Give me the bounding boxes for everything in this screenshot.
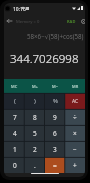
staticText: .	[34, 161, 36, 170]
button[interactable]: 5	[25, 125, 45, 141]
button[interactable]: 2	[25, 141, 45, 157]
staticText: ÷	[73, 113, 77, 122]
staticText: 1	[13, 145, 17, 154]
button[interactable]: 1	[4, 141, 25, 157]
button[interactable]: +	[65, 157, 85, 173]
staticText: 4	[13, 129, 17, 138]
staticText: MR	[72, 84, 79, 89]
staticText: 0	[13, 161, 17, 170]
staticText: M−	[52, 84, 58, 89]
button[interactable]: )	[25, 93, 45, 109]
staticText: Memory = 0	[16, 19, 40, 25]
staticText: 9	[53, 113, 57, 122]
button[interactable]: MR	[65, 79, 85, 93]
staticText: M+	[32, 84, 38, 89]
staticText: 3	[53, 145, 57, 154]
staticText: MC	[11, 84, 18, 89]
button[interactable]: 9	[45, 109, 65, 125]
staticText: 8	[33, 113, 37, 122]
button[interactable]: Settings	[78, 15, 85, 27]
button[interactable]: 7	[4, 109, 25, 125]
staticText: =	[53, 161, 57, 170]
button[interactable]: ÷	[65, 109, 85, 125]
button[interactable]: M+	[25, 79, 45, 93]
staticText: %	[53, 97, 58, 105]
staticText: −	[73, 145, 77, 154]
staticText: AC	[72, 98, 79, 105]
staticText: )	[34, 97, 36, 105]
button[interactable]: ×	[65, 125, 85, 141]
staticText: 10:16	[13, 6, 26, 13]
staticText: 2	[33, 145, 37, 154]
button[interactable]: Back	[4, 15, 14, 27]
button[interactable]: .	[25, 157, 45, 173]
button[interactable]: MC	[4, 79, 25, 93]
button[interactable]: 3	[45, 141, 65, 157]
button[interactable]: 0	[4, 157, 25, 173]
staticText: +	[73, 161, 77, 170]
staticText: 5	[33, 129, 37, 138]
button[interactable]: 8	[25, 109, 45, 125]
button[interactable]: (	[4, 93, 25, 109]
staticText: 7	[13, 113, 17, 122]
button[interactable]: 4	[4, 125, 25, 141]
button[interactable]: AC	[65, 93, 85, 109]
staticText: 58×6−√(58)+cos(58)	[27, 32, 84, 40]
staticText: ×	[73, 129, 77, 138]
staticText: (	[14, 97, 16, 105]
button[interactable]: %	[45, 93, 65, 109]
button[interactable]: −	[65, 141, 85, 157]
button[interactable]: 6	[45, 125, 65, 141]
button[interactable]: RAD	[66, 16, 76, 26]
staticText: 344.7026998	[10, 51, 79, 67]
staticText: RAD	[67, 19, 76, 24]
staticText: 6	[53, 129, 57, 138]
button[interactable]: =	[45, 157, 65, 173]
button[interactable]: M−	[45, 79, 65, 93]
